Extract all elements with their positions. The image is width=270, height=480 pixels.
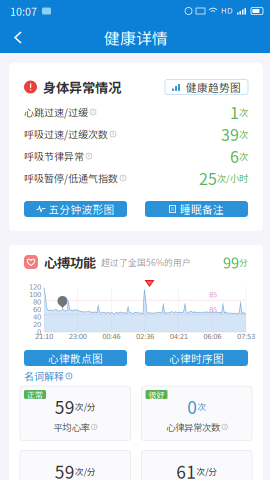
button[interactable]: 心律时序图	[145, 350, 248, 366]
staticText: 23:00	[69, 332, 87, 341]
staticText: 39	[221, 122, 239, 146]
staticText: 次/分	[196, 465, 217, 477]
button[interactable]: 返回	[0, 22, 32, 53]
staticText: 呼吸节律异常	[24, 149, 84, 163]
staticText: 次	[239, 127, 248, 141]
staticText: 呼吸暂停/低通气指数	[24, 171, 118, 185]
staticText: 06:06	[203, 332, 221, 341]
button[interactable]: 五分钟波形图	[24, 201, 127, 217]
staticText: 60	[33, 305, 41, 314]
staticText: 呼吸过速/过缓次数	[24, 127, 108, 141]
staticText: 五分钟波形图	[48, 201, 114, 217]
staticText: 健康趋势图	[186, 79, 241, 95]
staticText: 80	[33, 298, 41, 306]
button[interactable]: 睡眠备注	[145, 201, 248, 217]
button[interactable]: 心律散点图	[24, 350, 127, 366]
staticText: 85	[209, 291, 217, 299]
staticText: 次/分	[75, 465, 96, 477]
staticText: 心律散点图	[48, 350, 103, 366]
staticText: 100	[29, 290, 41, 299]
staticText: 次/分	[75, 400, 96, 413]
staticText: 超过了全国56%的用户	[101, 256, 191, 268]
button[interactable]: 健康趋势图	[165, 79, 248, 94]
staticText: 0	[187, 394, 197, 419]
staticText: 次	[239, 149, 248, 163]
staticText: 85	[209, 306, 217, 314]
staticText: 次	[197, 400, 206, 413]
staticText: 睡眠备注	[180, 201, 224, 217]
staticText: 61	[176, 459, 196, 480]
staticText: 名词解释	[24, 369, 64, 383]
staticText: 07:53	[237, 332, 255, 341]
staticText: 21:10	[35, 332, 53, 341]
staticText: 分	[239, 256, 248, 268]
staticText: 很好	[148, 389, 164, 400]
staticText: 20	[33, 320, 41, 329]
staticText: HD	[221, 7, 233, 15]
staticText: 健康详情	[104, 26, 168, 49]
staticText: 59	[55, 394, 75, 419]
staticText: 身体异常情况	[43, 77, 121, 97]
staticText: 120	[29, 283, 41, 291]
staticText: 心律异常次数	[166, 420, 220, 434]
staticText: 10:07	[10, 3, 37, 19]
staticText: 心跳过速/过缓	[24, 105, 88, 119]
staticText: 6	[230, 144, 239, 168]
staticText: 02:36	[136, 332, 154, 341]
staticText: 正常	[27, 389, 43, 400]
staticText: 心搏功能	[44, 252, 96, 272]
staticText: 25	[199, 166, 217, 190]
staticText: 次	[239, 105, 248, 119]
staticText: 40	[33, 313, 41, 321]
staticText: 心律时序图	[169, 350, 224, 366]
staticText: 1	[230, 100, 239, 124]
staticText: 59	[55, 459, 75, 480]
staticText: 平均心率	[53, 420, 89, 434]
staticText: 04:21	[170, 332, 188, 341]
staticText: 次/小时	[217, 171, 248, 185]
staticText: 00:46	[102, 332, 120, 341]
staticText: 0	[37, 328, 41, 336]
button[interactable]: 名词解释	[9, 366, 263, 386]
staticText: 99	[223, 251, 239, 273]
